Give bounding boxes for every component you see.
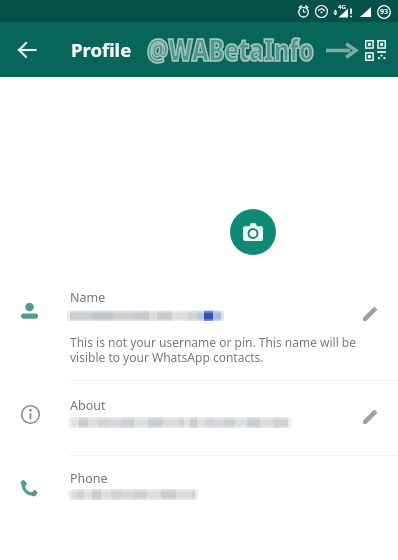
staticText: This is not your username or pin. This n… (70, 334, 357, 365)
button[interactable]: Edit name (355, 297, 387, 329)
staticText: Phone (70, 470, 108, 487)
button[interactable]: About (0, 388, 398, 453)
button[interactable]: Change profile photo (230, 209, 276, 255)
button[interactable]: Edit about (355, 400, 387, 432)
button[interactable]: Name (0, 282, 398, 378)
staticText: @WABetaInfo (147, 29, 314, 70)
staticText: @WABetaInfo (147, 29, 314, 70)
button[interactable]: Phone (0, 461, 398, 521)
staticText: 4G (338, 3, 346, 11)
staticText: Name (70, 289, 106, 306)
button[interactable]: Back (8, 31, 46, 69)
staticText: 93 (380, 7, 389, 17)
staticText: About (70, 397, 106, 414)
staticText: Profile (71, 37, 132, 62)
button[interactable]: QR code (362, 37, 388, 63)
